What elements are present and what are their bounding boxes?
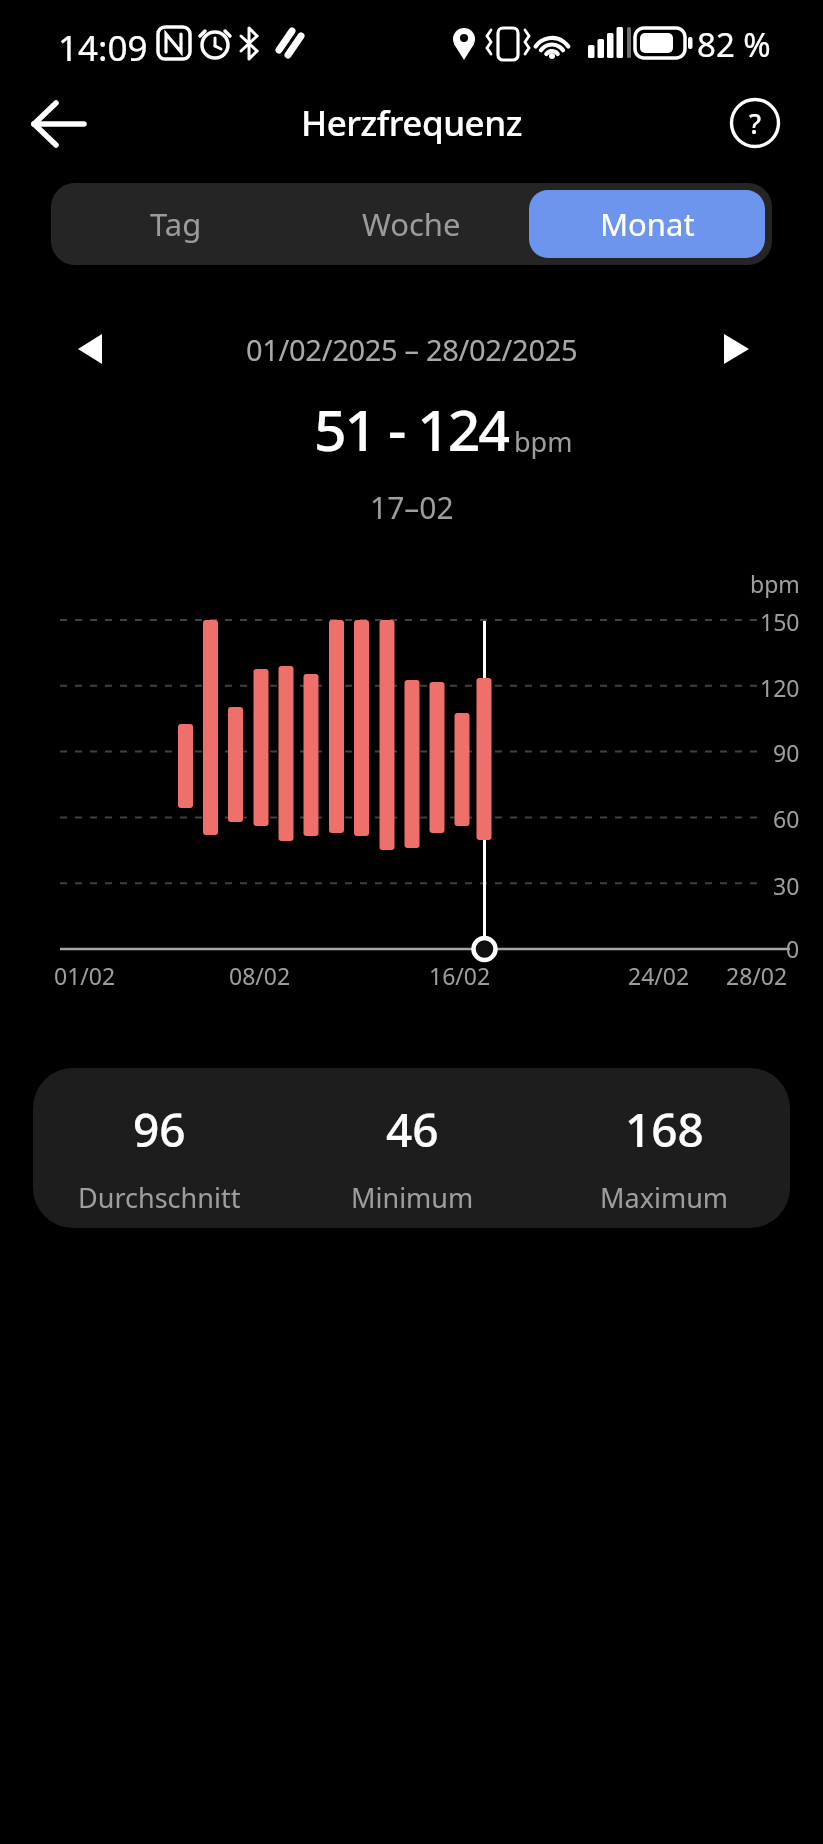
button[interactable] bbox=[707, 327, 759, 371]
staticText: 28/02 bbox=[726, 960, 788, 988]
staticText: 01/02 bbox=[54, 960, 116, 988]
staticText: Durchschnitt bbox=[78, 1179, 241, 1216]
staticText: Minimum bbox=[351, 1179, 474, 1216]
staticText: Tag bbox=[150, 203, 202, 245]
staticText: bpm bbox=[750, 568, 800, 598]
staticText: 168 bbox=[625, 1098, 704, 1161]
staticText: Maximum bbox=[600, 1179, 729, 1216]
staticText: 16/02 bbox=[429, 960, 491, 988]
button[interactable] bbox=[64, 327, 116, 371]
staticText: Herzfrequenz bbox=[301, 99, 522, 147]
staticText: 30 bbox=[773, 870, 800, 900]
staticText: 90 bbox=[773, 737, 800, 767]
button[interactable] bbox=[20, 100, 96, 148]
button[interactable]: Woche bbox=[293, 190, 529, 258]
staticText: 82 % bbox=[697, 22, 771, 64]
staticText: 24/02 bbox=[628, 960, 690, 988]
staticText: 51 - 124 bbox=[314, 390, 509, 462]
staticText: 0 bbox=[786, 933, 800, 963]
button[interactable]: ? bbox=[729, 97, 781, 149]
button[interactable]: Tag bbox=[58, 190, 293, 258]
staticText: 96 bbox=[133, 1098, 186, 1161]
staticText: 120 bbox=[760, 672, 800, 702]
staticText: ? bbox=[749, 105, 762, 142]
staticText: 150 bbox=[760, 606, 800, 636]
staticText: 60 bbox=[773, 803, 800, 833]
staticText: 46 bbox=[386, 1098, 439, 1161]
staticText: 14:09 bbox=[58, 24, 148, 72]
staticText: Monat bbox=[600, 203, 695, 245]
staticText: 01/02/2025 – 28/02/2025 bbox=[246, 330, 578, 369]
staticText: Woche bbox=[362, 203, 461, 245]
staticText: 08/02 bbox=[229, 960, 291, 988]
staticText: 17–02 bbox=[370, 487, 454, 527]
staticText: bpm bbox=[514, 423, 573, 460]
button[interactable]: Monat bbox=[529, 190, 765, 258]
